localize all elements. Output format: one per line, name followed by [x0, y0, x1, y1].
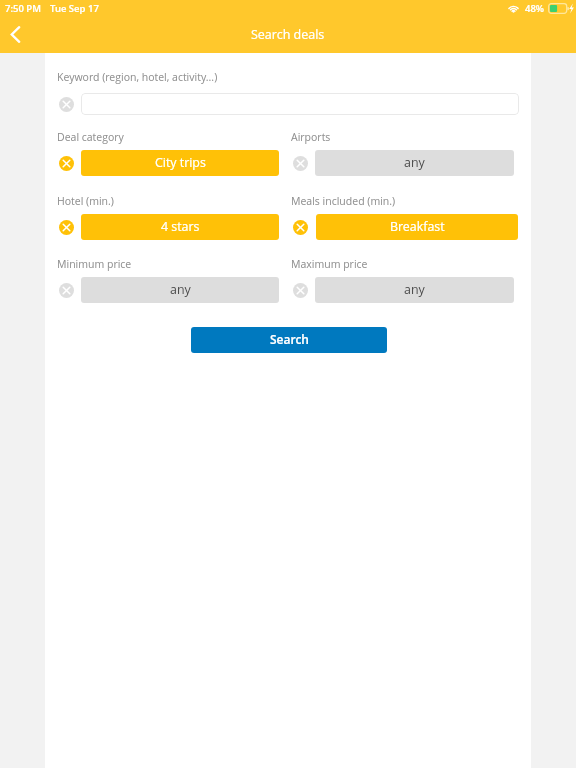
staticText: any	[170, 281, 191, 298]
staticText: Maximum price	[291, 257, 368, 271]
staticText: Tue Sep 17	[50, 2, 99, 15]
staticText: 7:50 PM	[5, 2, 41, 15]
staticText: any	[404, 281, 425, 298]
staticText: Meals included (min.)	[291, 194, 396, 208]
staticText: Search	[270, 331, 309, 347]
button[interactable]: any	[315, 150, 514, 176]
button[interactable]: any	[315, 277, 514, 303]
staticText: Deal category	[57, 130, 124, 144]
staticText: Minimum price	[57, 257, 132, 271]
button[interactable]	[81, 93, 519, 115]
staticText: 4 stars	[161, 218, 200, 235]
button[interactable]: Breakfast	[316, 214, 518, 240]
button[interactable]: Clear	[59, 283, 74, 298]
button[interactable]: Clear	[59, 220, 74, 235]
staticText: Airports	[291, 130, 331, 144]
button[interactable]: Clear	[59, 156, 74, 171]
staticText: 48%	[525, 2, 545, 15]
button[interactable]: any	[81, 277, 279, 303]
staticText: Hotel (min.)	[57, 194, 114, 208]
button[interactable]: 4 stars	[81, 214, 279, 240]
button[interactable]: Clear	[59, 97, 74, 112]
button[interactable]: Clear	[293, 283, 308, 298]
button[interactable]: City trips	[81, 150, 279, 176]
staticText: Keyword (region, hotel, activity...)	[57, 70, 218, 84]
staticText: Search deals	[251, 26, 325, 43]
staticText: City trips	[155, 154, 206, 171]
button[interactable]: Back	[1, 18, 29, 50]
button[interactable]: Search	[191, 327, 387, 353]
button[interactable]: Clear	[293, 156, 308, 171]
staticText: Breakfast	[390, 218, 445, 235]
button[interactable]: Clear	[293, 220, 308, 235]
staticText: any	[404, 154, 425, 171]
